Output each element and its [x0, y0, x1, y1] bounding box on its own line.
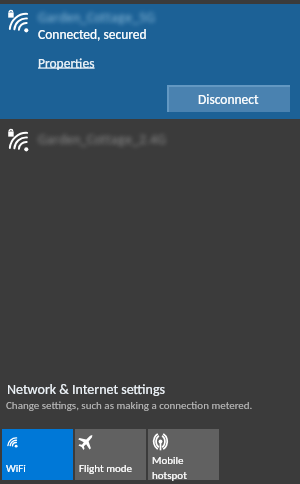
button[interactable]: Properties [38, 55, 95, 71]
staticText: Change settings, such as making a connec… [6, 399, 253, 412]
staticText: Flight mode [79, 462, 132, 475]
other: Secured Wi-Fi network [6, 8, 32, 34]
button[interactable]: Network & Internet settings [0, 380, 300, 398]
staticText: WiFi [6, 462, 26, 475]
button[interactable]: Wi-Fi [2, 429, 73, 480]
staticText: Properties [38, 55, 95, 71]
button[interactable]: Secured Wi-Fi network [0, 119, 300, 164]
staticText: Disconnect [198, 91, 259, 107]
other: Secured Wi-Fi network [6, 127, 32, 153]
button[interactable]: Flight mode [75, 429, 146, 480]
button[interactable]: Disconnect [167, 85, 290, 112]
staticText: Connected, secured [38, 26, 147, 42]
staticText: Mobile hotspot [152, 454, 187, 482]
staticText: Network & Internet settings [7, 381, 166, 398]
button[interactable]: Secured Wi-Fi network [0, 4, 300, 119]
button[interactable]: Mobile hotspot [148, 429, 219, 480]
